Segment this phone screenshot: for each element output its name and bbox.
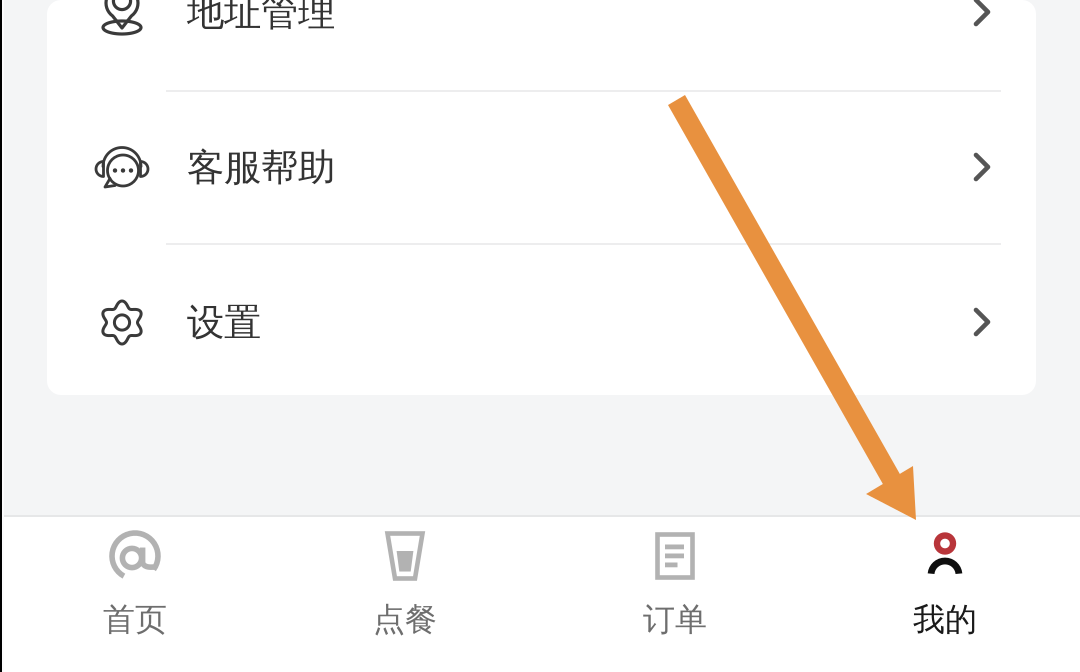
staticText: 订单 bbox=[643, 600, 707, 639]
staticText: 首页 bbox=[103, 600, 167, 639]
button[interactable]: 首页 bbox=[0, 517, 270, 672]
button[interactable]: 我的 bbox=[810, 517, 1080, 672]
staticText: 点餐 bbox=[373, 600, 437, 639]
button[interactable]: 点餐 bbox=[270, 517, 540, 672]
button[interactable]: 设置 bbox=[47, 245, 1036, 395]
staticText: 地址管理 bbox=[187, 0, 335, 35]
button[interactable]: 客服帮助 bbox=[47, 92, 1036, 243]
button[interactable]: 地址管理 bbox=[47, 0, 1036, 90]
staticText: 客服帮助 bbox=[187, 145, 335, 190]
button[interactable]: 订单 bbox=[540, 517, 810, 672]
staticText: 我的 bbox=[913, 600, 977, 639]
staticText: 设置 bbox=[187, 300, 261, 345]
